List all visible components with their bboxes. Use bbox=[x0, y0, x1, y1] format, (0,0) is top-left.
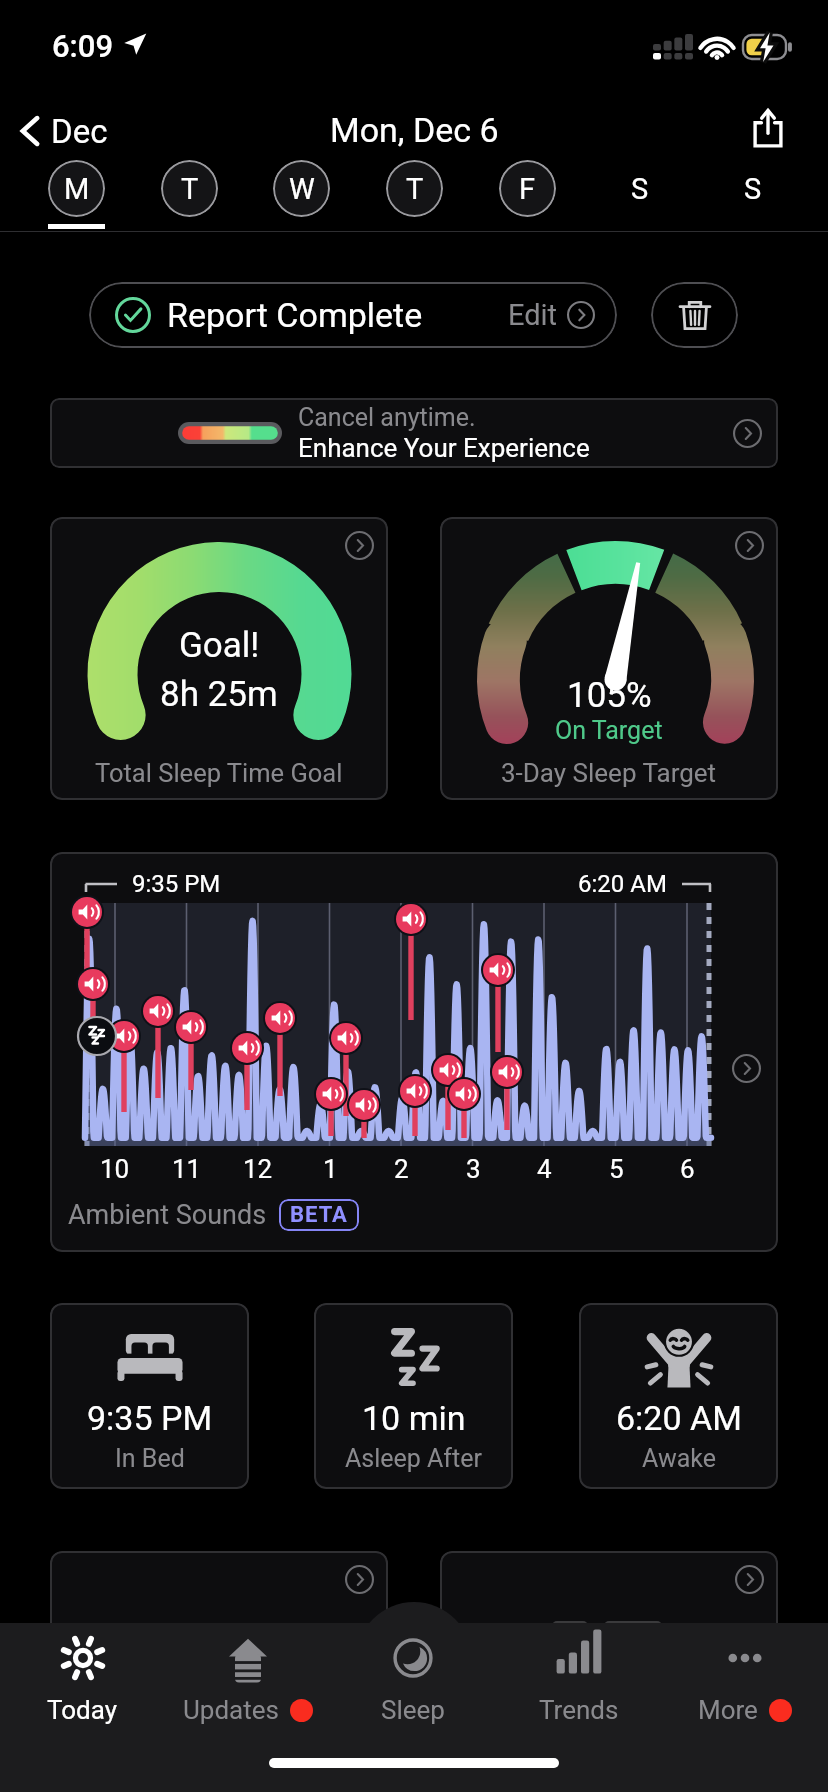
staticText: 2 bbox=[394, 1154, 409, 1184]
button[interactable]: 105% bbox=[440, 517, 778, 800]
staticText: 9:35 PM bbox=[132, 870, 221, 898]
staticText: Trends bbox=[539, 1695, 619, 1725]
staticText: 6:20 AM bbox=[616, 1398, 742, 1438]
staticText: 8h 25m bbox=[160, 674, 278, 715]
staticText: 11 bbox=[172, 1154, 202, 1184]
button[interactable]: Updates bbox=[166, 1632, 330, 1740]
staticText: W bbox=[289, 172, 315, 206]
staticText: Cancel anytime. bbox=[298, 403, 476, 432]
button[interactable]: S bbox=[605, 158, 673, 232]
staticText: T bbox=[406, 172, 424, 206]
staticText: 6 bbox=[680, 1154, 695, 1184]
button[interactable]: Sleep bbox=[331, 1632, 495, 1740]
button[interactable]: M bbox=[42, 158, 110, 232]
staticText: Dec bbox=[51, 112, 108, 151]
staticText: 9:35 PM bbox=[87, 1398, 213, 1438]
staticText: Ambient Sounds bbox=[68, 1199, 267, 1231]
staticText: Goal! bbox=[179, 625, 260, 666]
staticText: T bbox=[181, 172, 199, 206]
staticText: M bbox=[64, 172, 90, 206]
button[interactable] bbox=[440, 1551, 778, 1733]
staticText: 10 bbox=[100, 1154, 130, 1184]
staticText: 5 bbox=[609, 1154, 624, 1184]
staticText: Edit bbox=[508, 298, 558, 332]
staticText: Enhance Your Experience bbox=[298, 433, 590, 463]
button[interactable]: F bbox=[493, 158, 561, 232]
button[interactable]: 9:35 PM bbox=[50, 852, 778, 1252]
staticText: Awake bbox=[642, 1444, 716, 1473]
button[interactable]: S bbox=[718, 158, 786, 232]
staticText: 1 bbox=[323, 1154, 338, 1184]
button[interactable]: Trends bbox=[497, 1632, 661, 1740]
staticText: In Bed bbox=[115, 1444, 185, 1473]
button[interactable]: Goal! bbox=[50, 517, 388, 800]
staticText: 105% bbox=[567, 675, 652, 716]
button[interactable]: 10 min bbox=[314, 1303, 513, 1489]
button[interactable]: Today bbox=[0, 1632, 164, 1740]
button[interactable]: T bbox=[155, 158, 223, 232]
staticText: BETA bbox=[290, 1202, 348, 1228]
button[interactable]: More bbox=[663, 1632, 827, 1740]
button[interactable]: Delete bbox=[651, 282, 738, 348]
staticText: 4 bbox=[537, 1154, 552, 1184]
button[interactable]: Cancel anytime. bbox=[50, 398, 778, 468]
staticText: 12 bbox=[243, 1154, 273, 1184]
button[interactable]: 6:20 AM bbox=[579, 1303, 778, 1489]
staticText: 6:20 AM bbox=[578, 870, 667, 898]
button[interactable] bbox=[50, 1551, 388, 1733]
staticText: Mon, Dec 6 bbox=[330, 110, 499, 150]
staticText: Today bbox=[47, 1695, 118, 1725]
staticText: S bbox=[744, 172, 762, 206]
staticText: Report Complete bbox=[167, 295, 423, 335]
button[interactable]: T bbox=[380, 158, 448, 232]
staticText: Sleep bbox=[381, 1695, 445, 1725]
staticText: 3 bbox=[466, 1154, 481, 1184]
staticText: Updates bbox=[183, 1695, 279, 1725]
staticText: Asleep After bbox=[345, 1444, 482, 1473]
staticText: 3-Day Sleep Target bbox=[501, 758, 717, 788]
staticText: On Target bbox=[555, 716, 663, 745]
staticText: More bbox=[698, 1695, 758, 1725]
button[interactable]: Report Complete bbox=[89, 282, 617, 348]
button[interactable]: W bbox=[267, 158, 335, 232]
button[interactable]: Share bbox=[740, 100, 796, 156]
button[interactable]: 9:35 PM bbox=[50, 1303, 249, 1489]
staticText: F bbox=[519, 172, 536, 206]
staticText: 6:09 bbox=[52, 28, 114, 64]
staticText: Total Sleep Time Goal bbox=[95, 758, 343, 788]
button[interactable]: Dec bbox=[14, 105, 112, 157]
staticText: 10 min bbox=[362, 1398, 466, 1438]
staticText: S bbox=[631, 172, 649, 206]
